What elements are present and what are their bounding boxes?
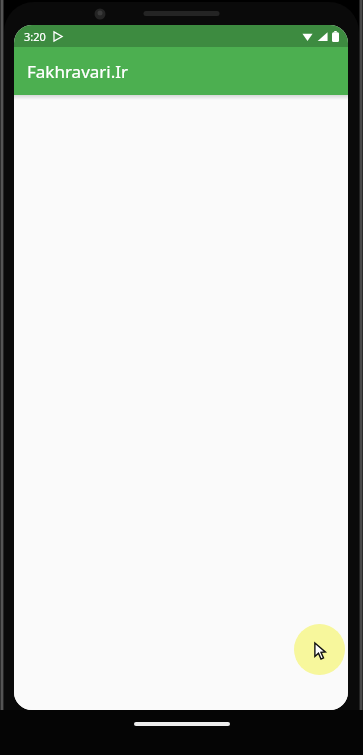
staticText: Fakhravari.Ir xyxy=(27,60,129,83)
staticText: 3:20 xyxy=(24,29,46,44)
button[interactable]: Open actions xyxy=(294,624,345,675)
